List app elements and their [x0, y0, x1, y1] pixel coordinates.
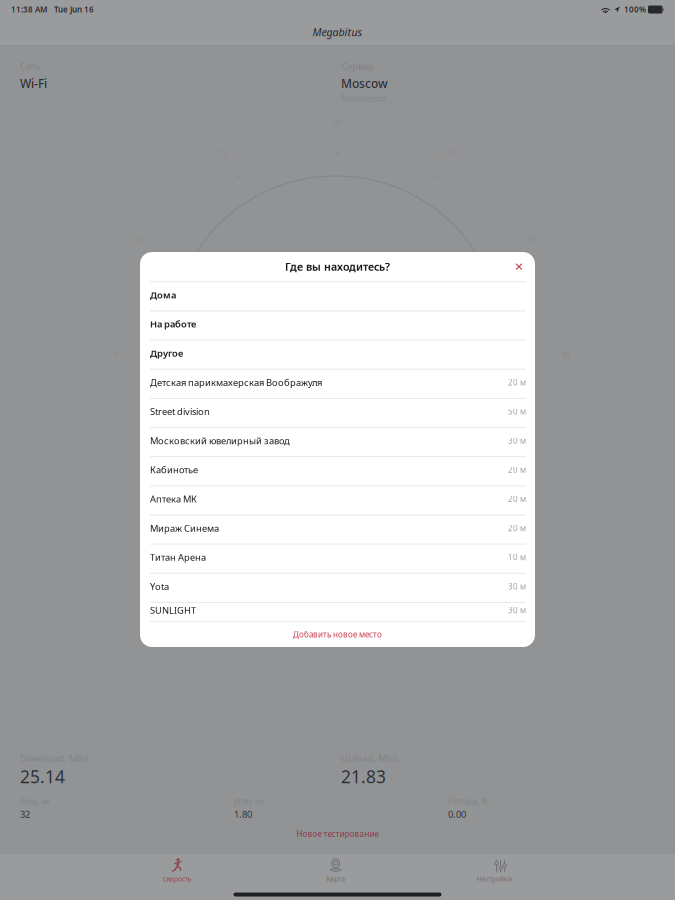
staticText: 30 м [508, 435, 526, 446]
staticText: Добавить новое место [293, 629, 382, 640]
staticText: Скорость [163, 875, 192, 883]
staticText: 20 м [508, 377, 526, 388]
staticText: 21.83 [341, 765, 386, 788]
button[interactable]: Другое [140, 340, 535, 369]
staticText: 20 м [508, 464, 526, 475]
button[interactable]: Настройки [415, 857, 573, 884]
staticText: 20 м [508, 494, 526, 504]
staticText: 20 м [508, 523, 526, 533]
staticText: Новое тестирование [296, 829, 378, 839]
button[interactable]: Добавить новое место [140, 622, 535, 647]
staticText: 30 м [508, 581, 526, 592]
staticText: 11:38 AM [11, 4, 47, 15]
button[interactable]: Кабинотье [140, 456, 535, 485]
staticText: Street division [150, 405, 210, 418]
staticText: Мираж Синема [150, 522, 219, 534]
staticText: Download, Мб/с [20, 752, 91, 764]
staticText: Детская парикмахерская Воображуля [150, 376, 322, 388]
button[interactable]: Новое тестирование [20, 827, 655, 841]
button[interactable]: Дома [140, 281, 535, 310]
button[interactable]: Yota [140, 573, 535, 602]
staticText: Где вы находитесь? [285, 259, 390, 274]
button[interactable]: Московский ювелирный завод [140, 427, 535, 456]
button[interactable]: На работе [140, 310, 535, 339]
staticText: Настройки [477, 875, 512, 883]
button[interactable]: Детская парикмахерская Воображуля [140, 369, 535, 398]
staticText: Сеть [20, 60, 40, 72]
staticText: 10 м [508, 552, 526, 562]
staticText: На работе [150, 318, 196, 330]
staticText: Карта [326, 875, 345, 883]
button[interactable]: Скорость [98, 857, 256, 884]
button[interactable]: Титан Арена [140, 544, 535, 573]
staticText: Титан Арена [150, 551, 206, 563]
staticText: Московский ювелирный завод [150, 434, 290, 447]
staticText: 1.80 [234, 808, 252, 820]
staticText: Кабинотье [150, 463, 198, 476]
staticText: Megabitus [312, 25, 362, 39]
button[interactable]: Карта [256, 857, 415, 884]
staticText: 0.00 [448, 808, 466, 820]
staticText: Ping, мс [20, 796, 51, 807]
staticText: Jitter, мс [234, 796, 265, 807]
staticText: Upload, Мб/с [341, 752, 400, 764]
staticText: 32 [20, 808, 30, 820]
staticText: 25.14 [20, 765, 65, 788]
button[interactable]: Аптека МК [140, 485, 535, 514]
staticText: Потери, % [448, 796, 488, 807]
button[interactable]: Закрыть [503, 252, 535, 281]
staticText: Wi-Fi [20, 75, 47, 91]
staticText: 50 м [508, 406, 526, 417]
staticText: Дома [150, 289, 176, 301]
staticText: SUNLIGHT [150, 604, 196, 616]
button[interactable]: SUNLIGHT [140, 602, 535, 621]
staticText: Аптека МК [150, 493, 197, 505]
button[interactable]: Мираж Синема [140, 514, 535, 544]
staticText: 30 м [508, 605, 526, 615]
staticText: 100% [624, 4, 646, 15]
staticText: Yota [150, 580, 169, 592]
staticText: Другое [150, 347, 183, 359]
button[interactable]: Street division [140, 398, 535, 427]
staticText: Сервер [341, 60, 374, 72]
staticText: Moscow [341, 75, 388, 91]
staticText: Tue Jun 16 [54, 4, 94, 15]
staticText: Rostelecom [341, 93, 386, 104]
